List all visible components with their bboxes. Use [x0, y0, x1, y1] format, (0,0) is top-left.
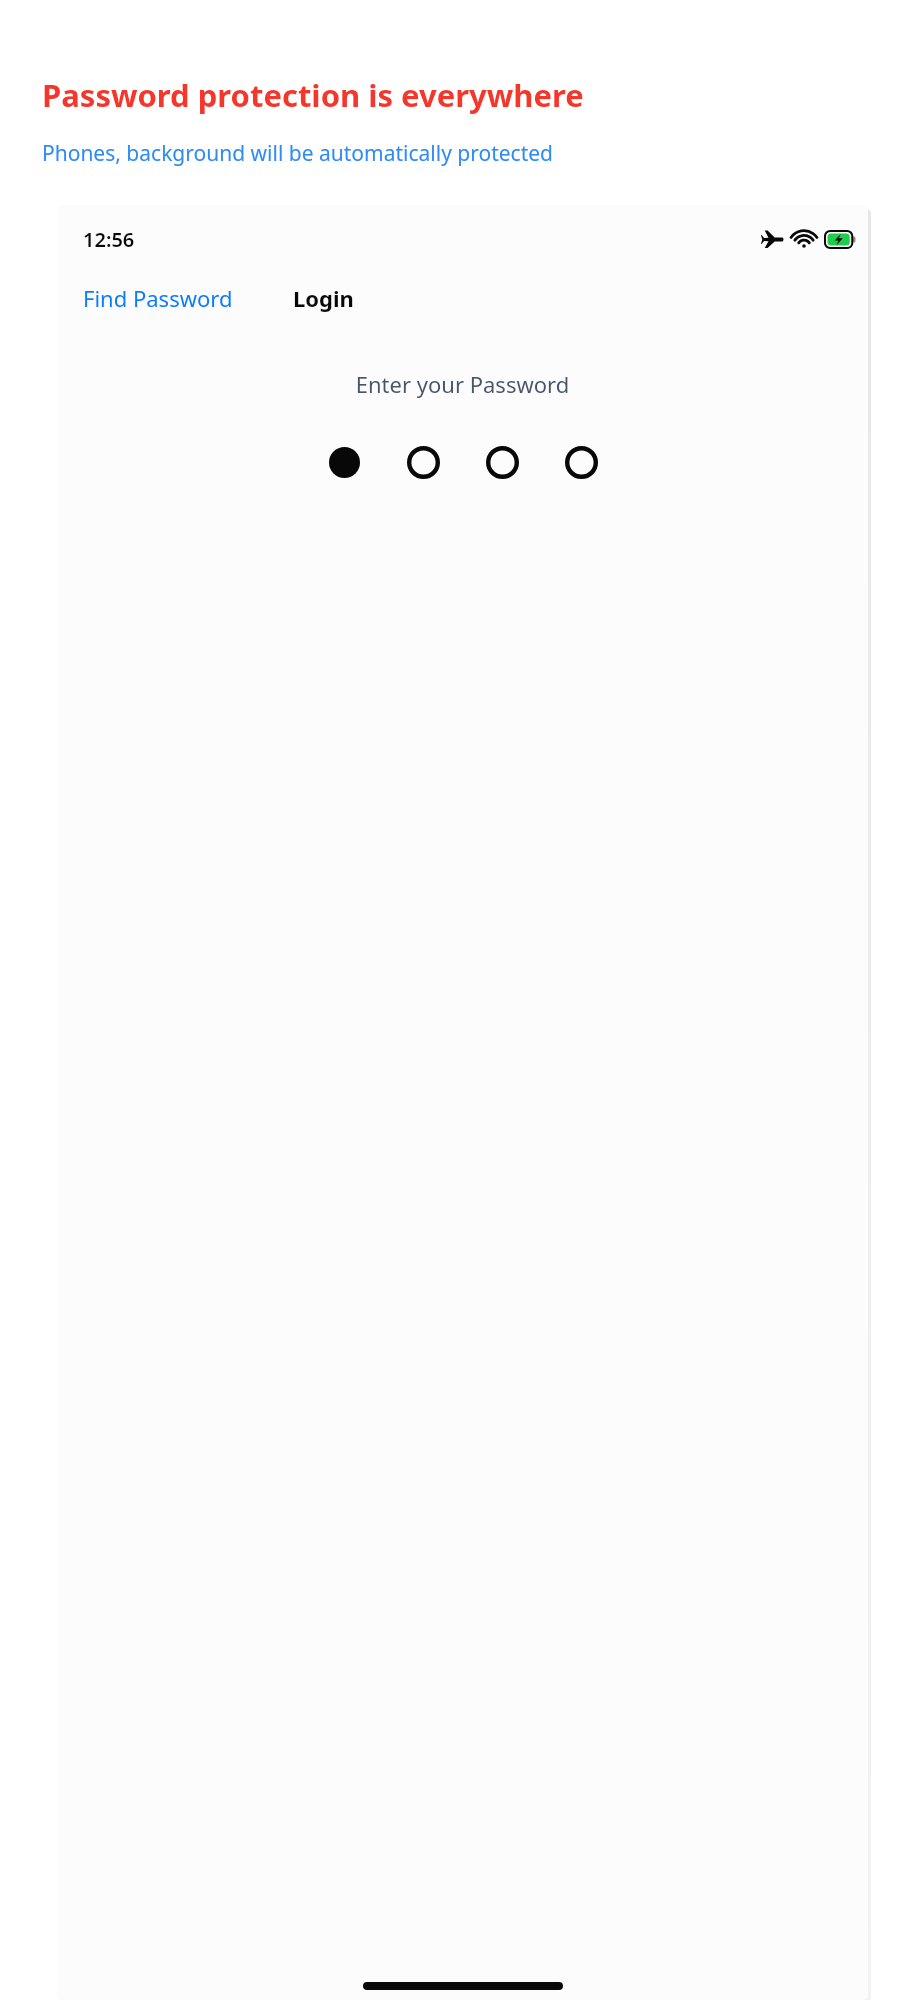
other: Airplane mode	[761, 230, 783, 248]
button[interactable]	[562, 443, 600, 481]
button[interactable]	[325, 443, 363, 481]
staticText: Find Password	[83, 283, 233, 313]
staticText: Password protection is everywhere	[42, 74, 910, 116]
button[interactable]	[483, 443, 521, 481]
other: Battery charging	[825, 231, 856, 248]
staticText: 12:56	[83, 226, 135, 253]
staticText: Phones, background will be automatically…	[42, 139, 910, 168]
button[interactable]	[404, 443, 442, 481]
button[interactable]: Find Password	[77, 275, 239, 321]
button[interactable]: Login	[287, 275, 360, 321]
staticText: Login	[293, 283, 354, 313]
staticText: Enter your Password	[57, 369, 868, 399]
other: Wi-Fi	[793, 230, 815, 248]
